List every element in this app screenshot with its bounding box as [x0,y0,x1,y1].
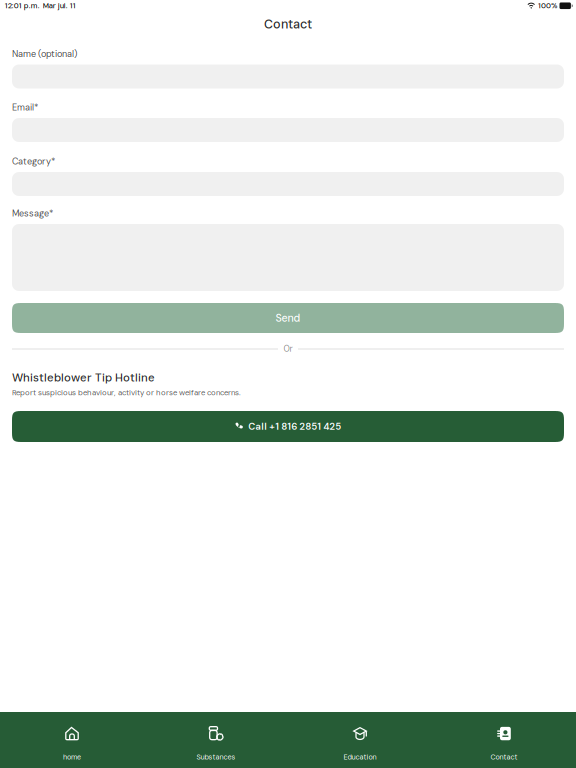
staticText: 12:01 p.m. [5,1,40,11]
button[interactable]: Education [288,712,432,768]
button[interactable]: Contact [432,712,576,768]
staticText: Contact [490,752,517,762]
staticText: Mar jul. 11 [43,1,76,11]
button[interactable]: Substances [144,712,288,768]
button[interactable]: Send [12,303,564,333]
button[interactable]: home [0,712,144,768]
staticText: Whistleblower Tip Hotline [12,370,155,385]
staticText: Email* [12,102,38,113]
staticText: Report suspicious behaviour, activity or… [12,387,241,398]
button[interactable]: Call +1 816 2851 425 [12,411,564,442]
staticText: Send [275,311,300,325]
staticText: Message* [12,208,53,219]
staticText: Contact [264,16,312,32]
staticText: Category* [12,156,55,167]
staticText: Name (optional) [12,48,77,60]
staticText: Or [283,343,292,354]
staticText: 100% [538,1,557,11]
staticText: Education [343,752,376,762]
staticText: Substances [196,752,235,762]
staticText: home [63,752,81,762]
staticText: Call +1 816 2851 425 [248,420,341,433]
